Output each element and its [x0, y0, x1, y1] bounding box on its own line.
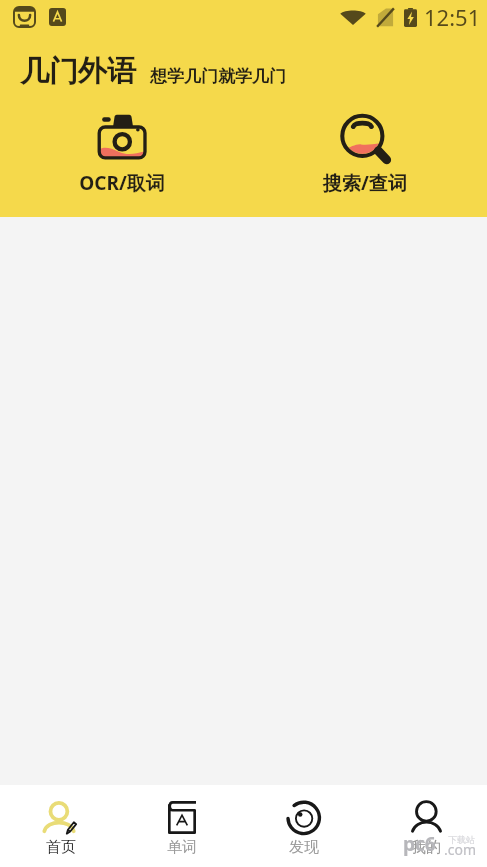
staticText: 我的	[411, 838, 441, 857]
button[interactable]: 我的	[365, 785, 487, 867]
button[interactable]: OCR capture word	[0, 112, 243, 196]
button[interactable]: 首页	[0, 785, 121, 867]
button[interactable]: Search word	[243, 112, 487, 196]
staticText: 想学几门就学几门	[150, 66, 286, 87]
staticText: 搜索/查词	[323, 170, 407, 196]
staticText: 发现	[289, 838, 319, 857]
staticText: pc6	[403, 831, 436, 857]
staticText: .com	[444, 840, 477, 859]
staticText: 几门外语	[20, 53, 136, 90]
staticText: 首页	[46, 838, 76, 857]
staticText: 单词	[167, 838, 197, 857]
staticText: OCR/取词	[79, 170, 165, 196]
button[interactable]: 单词	[121, 785, 243, 867]
staticText: 下载站	[448, 834, 475, 845]
staticText: 12:51	[424, 2, 481, 32]
button[interactable]: 发现	[243, 785, 365, 867]
